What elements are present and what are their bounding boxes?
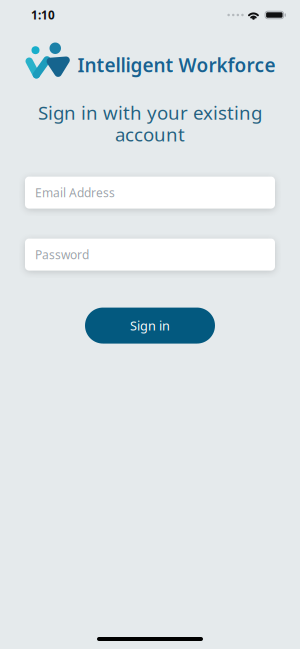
textField[interactable]: Password (25, 239, 275, 271)
staticText: Intelligent Workforce (77, 52, 275, 77)
textField[interactable]: Email Address (25, 177, 275, 209)
button[interactable]: Sign in (85, 308, 215, 344)
staticText: account (115, 122, 185, 147)
staticText: Email Address (35, 185, 115, 200)
staticText: 1:10 (31, 7, 55, 23)
staticText: Password (35, 247, 89, 262)
staticText: Sign in with your existing (38, 100, 262, 125)
staticText: Sign in (130, 317, 170, 334)
